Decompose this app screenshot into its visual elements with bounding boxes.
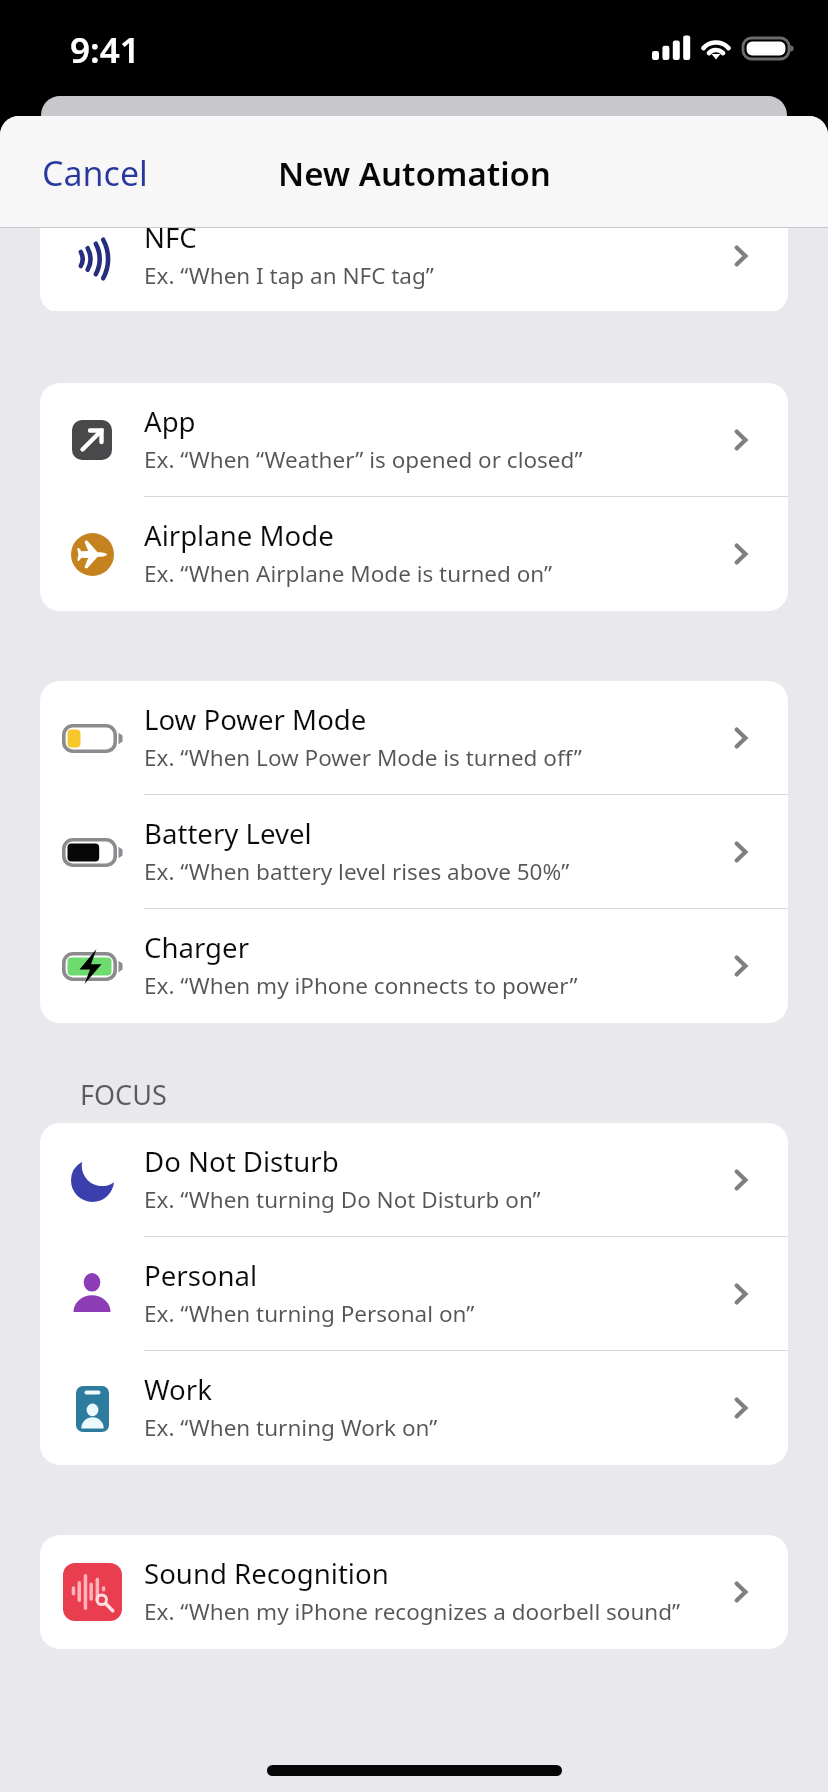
staticText: Work [144,1370,212,1408]
staticText: Airplane Mode [144,516,334,554]
button[interactable]: Cancel [0,140,172,206]
button[interactable]: Personal [40,1237,788,1351]
staticText: Ex. “When turning Personal on” [144,1298,475,1329]
button[interactable]: Do Not Disturb [40,1123,788,1237]
staticText: Ex. “When Airplane Mode is turned on” [144,558,553,589]
staticText: Sound Recognition [144,1554,389,1592]
staticText: Ex. “When turning Do Not Disturb on” [144,1184,541,1215]
button[interactable]: Charger [40,909,788,1023]
staticText: Personal [144,1256,258,1294]
staticText: Ex. “When turning Work on” [144,1412,438,1443]
button[interactable]: Battery Level [40,795,788,909]
staticText: Low Power Mode [144,700,367,738]
staticText: Battery Level [144,814,312,852]
button[interactable]: NFC [40,228,788,311]
staticText: New Automation [278,151,551,196]
staticText: App [144,402,196,440]
button[interactable]: Work [40,1351,788,1465]
staticText: Do Not Disturb [144,1142,339,1180]
staticText: Ex. “When I tap an NFC tag” [144,260,434,291]
button[interactable]: Sound Recognition [40,1535,788,1649]
staticText: NFC [144,228,197,256]
button[interactable]: App [40,383,788,497]
button[interactable]: Airplane Mode [40,497,788,611]
staticText: Ex. “When my iPhone connects to power” [144,970,578,1001]
staticText: Ex. “When “Weather” is opened or closed” [144,444,583,475]
staticText: Ex. “When Low Power Mode is turned off” [144,742,582,773]
staticText: Ex. “When battery level rises above 50%” [144,856,570,887]
staticText: Cancel [42,150,148,196]
staticText: 9:41 [70,26,140,74]
button[interactable]: Low Power Mode [40,681,788,795]
staticText: Charger [144,928,250,966]
staticText: FOCUS [80,1076,167,1113]
staticText: Ex. “When my iPhone recognizes a doorbel… [144,1596,681,1627]
